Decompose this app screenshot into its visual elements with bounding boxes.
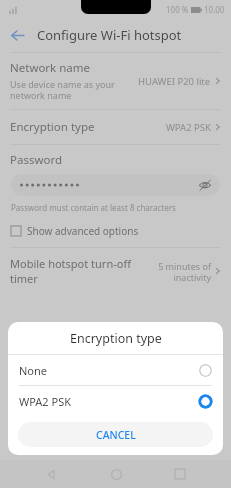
staticText: None	[19, 363, 199, 378]
staticText: 100 %	[166, 4, 189, 15]
button[interactable]: Mobile hotspot turn-off timer	[0, 248, 231, 294]
staticText: Password must contain at least 8 charact…	[11, 202, 176, 213]
button[interactable]: Network name	[0, 53, 231, 109]
button[interactable]: Home	[102, 460, 130, 488]
staticText: WPA2 PSK	[166, 121, 211, 134]
staticText: Password	[10, 152, 63, 168]
staticText: HUAWEI P20 lite	[138, 75, 211, 88]
button[interactable]: WPA2 PSK	[8, 386, 223, 416]
staticText: CANCEL	[96, 428, 136, 442]
button[interactable]: Show password	[11, 174, 220, 196]
button[interactable]: Show advanced options	[0, 221, 231, 243]
button[interactable]: Recents	[166, 460, 194, 488]
staticText: Encryption type	[10, 119, 166, 135]
staticText: WPA2 PSK	[19, 394, 199, 409]
staticText: Use device name as your network name	[10, 78, 134, 102]
button[interactable]: Show password	[198, 178, 212, 192]
staticText: Configure Wi-Fi hotspot	[37, 26, 182, 44]
staticText: Encryption type	[70, 330, 162, 347]
staticText: Mobile hotspot turn-off timer	[10, 256, 158, 286]
staticText: 10.00	[204, 4, 225, 15]
button[interactable]: None	[8, 355, 223, 385]
staticText: 5 minutes of inactivity	[158, 260, 211, 283]
button[interactable]: Encryption type	[0, 110, 231, 144]
staticText: Network name	[10, 60, 91, 76]
button[interactable]: Back	[0, 18, 34, 52]
button[interactable]: CANCEL	[18, 422, 213, 447]
staticText: Show advanced options	[27, 224, 139, 238]
button[interactable]: Back	[37, 460, 65, 488]
